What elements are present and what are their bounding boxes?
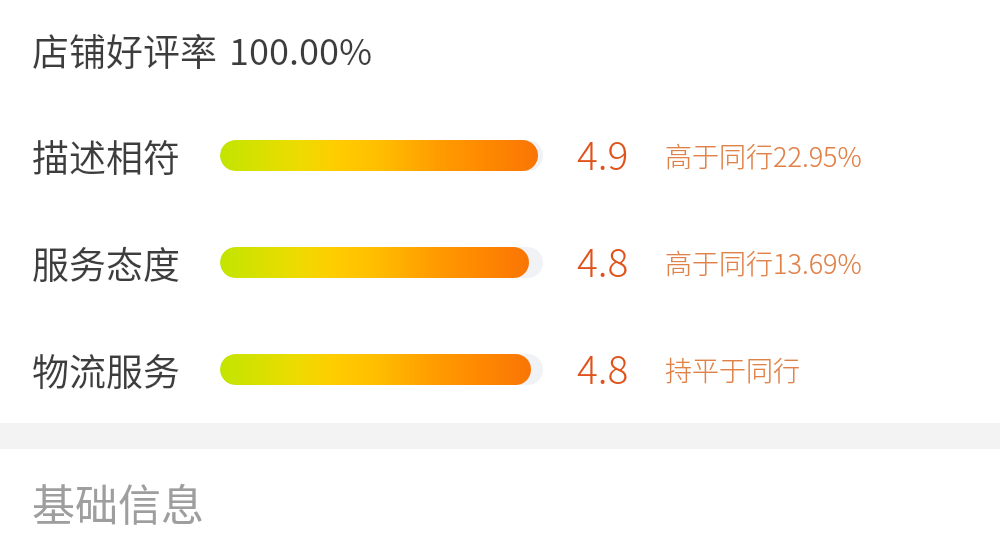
staticText: 服务态度 [32, 236, 180, 290]
staticText: 描述相符 [32, 129, 180, 183]
staticText: 基础信息 [32, 471, 204, 533]
staticText: 高于同行13.69% [665, 243, 862, 282]
other: 物流服务 4.8 [220, 354, 543, 385]
other: 描述相符 4.9 [220, 140, 543, 171]
staticText: 4.8 [577, 339, 629, 395]
staticText: 高于同行22.95% [665, 136, 862, 175]
staticText: 100.00% [229, 23, 373, 75]
staticText: 持平于同行 [665, 350, 800, 389]
staticText: 4.9 [577, 125, 629, 181]
other: 服务态度 4.8 [220, 247, 543, 278]
staticText: 店铺好评率 [32, 23, 217, 77]
staticText: 物流服务 [32, 343, 180, 397]
button[interactable]: 描述相符 [0, 103, 1000, 210]
button[interactable]: 物流服务 [0, 317, 1000, 424]
staticText: 4.8 [577, 232, 629, 288]
button[interactable]: 服务态度 [0, 210, 1000, 317]
